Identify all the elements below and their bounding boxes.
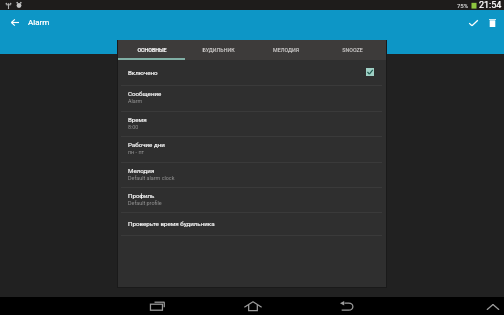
button[interactable]: Время: [118, 111, 386, 136]
staticText: пн - пт: [128, 149, 145, 155]
staticText: Профиль: [128, 192, 155, 199]
button[interactable]: Delete: [483, 14, 501, 32]
button[interactable]: Back: [338, 297, 356, 315]
staticText: 75%: [457, 2, 469, 9]
button[interactable]: Recents: [148, 297, 166, 315]
staticText: Default profile: [128, 200, 162, 206]
staticText: Alarm: [28, 18, 50, 27]
staticText: ОСНОВНЫЕ: [137, 47, 167, 53]
button[interactable]: Expand: [484, 298, 502, 315]
button[interactable]: Мелодия: [118, 162, 386, 188]
staticText: 8:00: [128, 124, 139, 130]
button[interactable]: SNOOZE: [319, 40, 386, 60]
button[interactable]: Home: [244, 297, 262, 315]
button[interactable]: Рабочие дни: [118, 136, 386, 162]
staticText: Сообщение: [128, 90, 162, 97]
staticText: Default alarm clock: [128, 175, 175, 181]
button[interactable]: БУДИЛЬНИК: [185, 40, 252, 60]
staticText: БУДИЛЬНИК: [202, 47, 235, 53]
button[interactable]: Сообщение: [118, 85, 386, 111]
staticText: SNOOZE: [342, 47, 363, 53]
staticText: 21:54: [479, 0, 502, 10]
staticText: Рабочие дни: [128, 141, 165, 148]
staticText: Alarm: [128, 98, 143, 104]
staticText: Время: [128, 116, 147, 123]
button[interactable]: Профиль: [118, 187, 386, 212]
button[interactable]: МЕЛОДИЯ: [252, 40, 319, 60]
button[interactable]: Проверьте время будильника: [118, 212, 386, 235]
button[interactable]: ОСНОВНЫЕ: [118, 40, 185, 60]
staticText: Проверьте время будильника: [128, 220, 215, 227]
staticText: Мелодия: [128, 167, 155, 174]
button[interactable]: Done: [464, 14, 482, 32]
staticText: МЕЛОДИЯ: [273, 47, 299, 53]
button[interactable]: Back: [4, 12, 25, 33]
button[interactable]: Включено: [118, 59, 386, 85]
staticText: Включено: [128, 69, 158, 76]
